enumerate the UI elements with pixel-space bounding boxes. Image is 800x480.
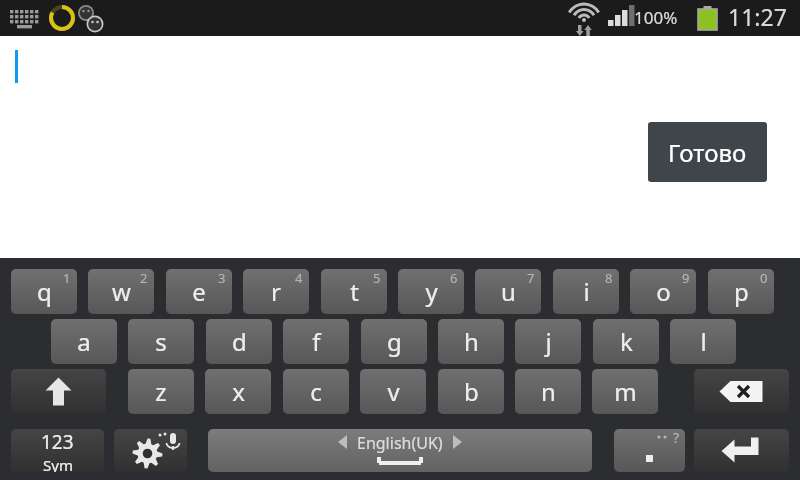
- staticText: 9: [682, 269, 690, 287]
- staticText: 8: [605, 269, 613, 287]
- staticText: d: [232, 325, 247, 358]
- button[interactable]: 123: [11, 429, 104, 472]
- staticText: o: [656, 275, 671, 308]
- staticText: ?: [673, 429, 680, 447]
- staticText: q: [37, 275, 52, 308]
- button[interactable]: Space, English (UK): [208, 429, 592, 472]
- staticText: 123: [41, 429, 74, 455]
- button[interactable]: d: [206, 319, 272, 364]
- staticText: English(UK): [357, 432, 443, 454]
- button[interactable]: h: [438, 319, 504, 364]
- button[interactable]: o: [630, 269, 696, 314]
- staticText: Готово: [668, 136, 747, 169]
- staticText: 5: [373, 269, 381, 287]
- staticText: 2: [140, 269, 148, 287]
- staticText: h: [464, 325, 479, 358]
- button[interactable]: Enter: [694, 429, 789, 472]
- button[interactable]: j: [515, 319, 581, 364]
- button[interactable]: f: [283, 319, 349, 364]
- button[interactable]: v: [360, 369, 426, 414]
- staticText: l: [700, 325, 707, 358]
- staticText: x: [232, 375, 245, 408]
- button[interactable]: c: [283, 369, 349, 414]
- button[interactable]: Backspace: [694, 369, 789, 414]
- button[interactable]: Period: [614, 429, 685, 472]
- staticText: 0: [760, 269, 768, 287]
- staticText: y: [425, 275, 438, 308]
- staticText: 100%: [634, 6, 678, 29]
- staticText: i: [583, 275, 590, 308]
- button[interactable]: x: [205, 369, 271, 414]
- button[interactable]: k: [593, 319, 659, 364]
- staticText: 1: [63, 269, 71, 287]
- button[interactable]: z: [128, 369, 194, 414]
- staticText: n: [541, 375, 556, 408]
- button[interactable]: Shift: [11, 369, 106, 414]
- staticText: u: [501, 275, 516, 308]
- button[interactable]: p: [708, 269, 774, 314]
- staticText: 4: [295, 269, 303, 287]
- button[interactable]: u: [475, 269, 541, 314]
- staticText: Sym: [43, 455, 73, 472]
- button[interactable]: g: [361, 319, 427, 364]
- staticText: v: [387, 375, 400, 408]
- staticText: m: [614, 375, 637, 408]
- button[interactable]: Готово: [648, 122, 767, 182]
- staticText: g: [387, 325, 402, 358]
- staticText: 7: [527, 269, 535, 287]
- button[interactable]: q: [11, 269, 77, 314]
- button[interactable]: s: [128, 319, 194, 364]
- button[interactable]: r: [243, 269, 309, 314]
- staticText: 11:27: [728, 1, 787, 32]
- button[interactable]: i: [553, 269, 619, 314]
- staticText: r: [271, 275, 281, 308]
- button[interactable]: t: [321, 269, 387, 314]
- staticText: k: [620, 325, 633, 358]
- staticText: a: [77, 325, 91, 358]
- staticText: c: [310, 375, 322, 408]
- staticText: s: [155, 325, 167, 358]
- staticText: w: [112, 275, 131, 308]
- button[interactable]: n: [515, 369, 581, 414]
- button[interactable]: b: [438, 369, 504, 414]
- staticText: 6: [450, 269, 458, 287]
- staticText: e: [192, 275, 206, 308]
- staticText: p: [734, 275, 749, 308]
- button[interactable]: a: [51, 319, 117, 364]
- button[interactable]: w: [88, 269, 154, 314]
- staticText: b: [464, 375, 479, 408]
- button[interactable]: m: [592, 369, 658, 414]
- button[interactable]: y: [398, 269, 464, 314]
- staticText: t: [350, 275, 359, 308]
- staticText: f: [312, 325, 321, 358]
- staticText: 3: [218, 269, 226, 287]
- staticText: j: [545, 325, 552, 358]
- button[interactable]: e: [166, 269, 232, 314]
- button[interactable]: l: [670, 319, 736, 364]
- button[interactable]: Settings and voice input: [114, 429, 187, 472]
- staticText: z: [155, 375, 167, 408]
